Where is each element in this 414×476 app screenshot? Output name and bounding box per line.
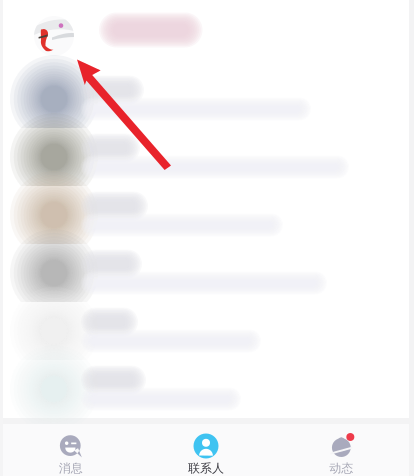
button[interactable]: 动态	[274, 424, 409, 476]
button[interactable]	[3, 186, 409, 244]
staticText: 动态	[329, 461, 353, 476]
button[interactable]	[3, 128, 409, 186]
button[interactable]	[3, 70, 409, 128]
button[interactable]	[3, 0, 409, 70]
staticText: 联系人	[188, 461, 224, 476]
button[interactable]	[3, 244, 409, 302]
button[interactable]: 消息	[3, 424, 138, 476]
button[interactable]: 联系人	[138, 424, 274, 476]
button[interactable]	[3, 360, 409, 418]
button[interactable]	[3, 302, 409, 360]
staticText: 消息	[59, 461, 83, 476]
